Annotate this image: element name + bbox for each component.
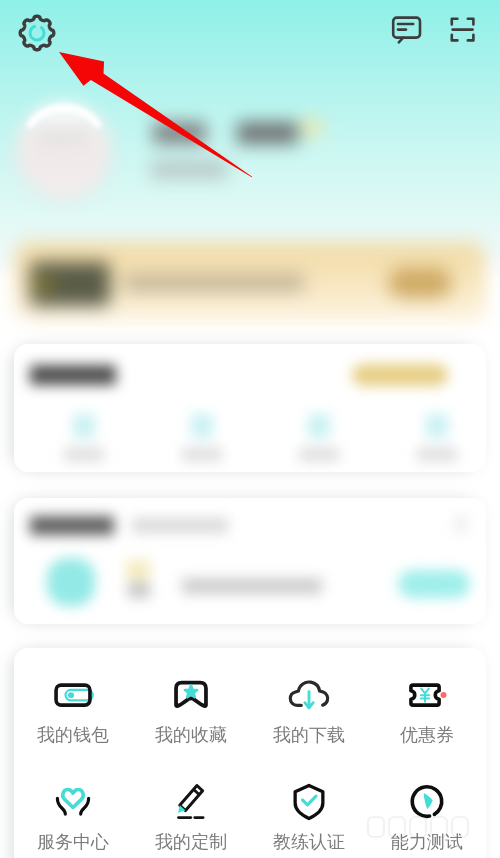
staticText: 我的下载 — [273, 724, 345, 747]
staticText: 能力测试 — [391, 831, 463, 854]
button[interactable]: 我的收藏 — [132, 673, 250, 747]
staticText: 我的定制 — [155, 831, 227, 854]
button[interactable]: 能力测试 — [368, 780, 486, 854]
button[interactable] — [0, 220, 500, 340]
staticText: 我的钱包 — [37, 724, 109, 747]
staticText: 优惠券 — [400, 724, 454, 747]
staticText: 教练认证 — [273, 831, 345, 854]
button[interactable]: 我的钱包 — [14, 673, 132, 747]
staticText: 我的收藏 — [155, 724, 227, 747]
staticText: 服务中心 — [37, 831, 109, 854]
button[interactable]: 服务中心 — [14, 780, 132, 854]
button[interactable]: Messages — [388, 12, 428, 52]
button[interactable]: Scan — [445, 12, 485, 52]
button[interactable]: 我的定制 — [132, 780, 250, 854]
button[interactable]: 优惠券 — [368, 673, 486, 747]
button[interactable]: Settings — [17, 13, 57, 53]
button[interactable]: 我的下载 — [250, 673, 368, 747]
button[interactable]: 教练认证 — [250, 780, 368, 854]
